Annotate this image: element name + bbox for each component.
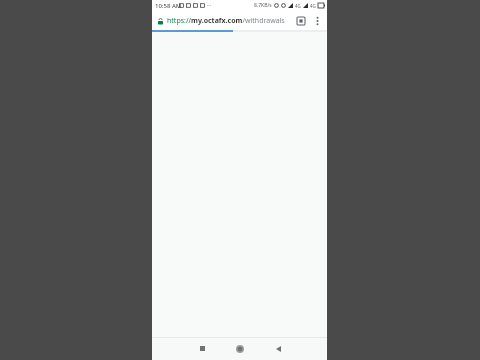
button[interactable]: Back (259, 337, 297, 360)
staticText: 8.7KB/s (254, 2, 272, 9)
staticText: ··· (207, 2, 212, 9)
button[interactable]: Recent apps (183, 337, 221, 360)
staticText: 4G (310, 3, 316, 9)
button[interactable]: Home (221, 337, 259, 360)
button[interactable]: https://my.octafx.com/withdrawals (155, 16, 294, 26)
staticText: https://my.octafx.com/withdrawals (167, 16, 285, 26)
staticText: 4G (295, 3, 301, 9)
staticText: 10:58 AM (155, 2, 182, 10)
button[interactable]: Tabs (294, 14, 308, 28)
button[interactable]: More options (310, 14, 324, 28)
